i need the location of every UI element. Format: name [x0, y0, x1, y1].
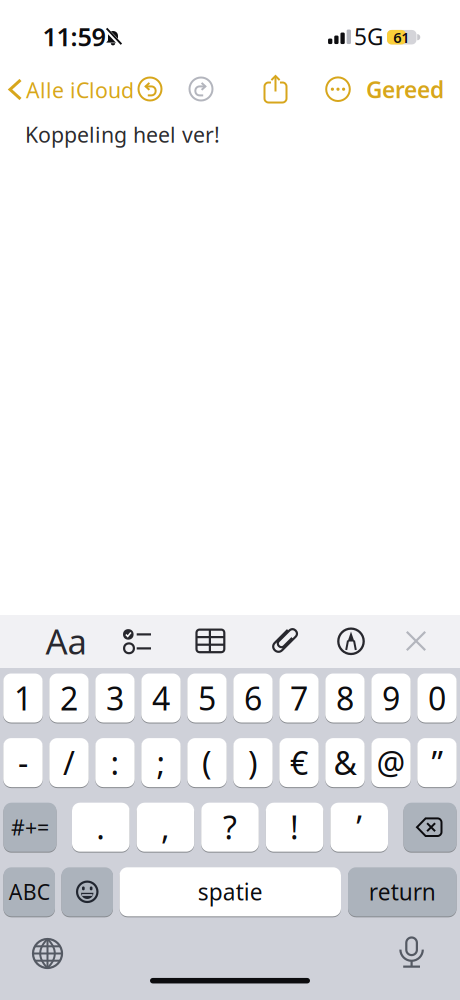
- staticText: .: [96, 806, 105, 848]
- staticText: 5G: [354, 21, 384, 51]
- staticText: 6: [244, 677, 262, 719]
- button[interactable]: return: [348, 866, 456, 917]
- button[interactable]: @: [371, 737, 411, 788]
- staticText: ,: [161, 806, 170, 848]
- staticText: €: [290, 741, 308, 784]
- staticText: ): [248, 741, 258, 784]
- staticText: 0: [428, 677, 446, 719]
- button[interactable]: 9: [371, 672, 411, 723]
- button[interactable]: More: [323, 74, 353, 104]
- button[interactable]: ABC: [3, 866, 55, 917]
- button[interactable]: #+=: [3, 802, 56, 853]
- button[interactable]: Next keyboard: [31, 937, 63, 969]
- button[interactable]: Alle iCloud: [0, 72, 160, 106]
- staticText: @: [376, 741, 405, 784]
- staticText: ABC: [9, 878, 50, 906]
- button[interactable]: 5: [187, 672, 227, 723]
- button[interactable]: 0: [417, 672, 457, 723]
- staticText: 2: [60, 677, 78, 719]
- staticText: Aa: [45, 618, 86, 664]
- button[interactable]: 8: [325, 672, 365, 723]
- staticText: Alle iCloud: [26, 76, 134, 104]
- staticText: #+=: [11, 813, 49, 841]
- button[interactable]: Close: [394, 619, 438, 663]
- staticText: /: [63, 741, 75, 784]
- staticText: 8: [336, 677, 354, 719]
- button[interactable]: ”: [417, 737, 457, 788]
- button[interactable]: ?: [201, 802, 259, 853]
- button[interactable]: /: [49, 737, 89, 788]
- button[interactable]: Gereed: [355, 72, 455, 106]
- button[interactable]: €: [279, 737, 319, 788]
- button[interactable]: Dictate: [395, 937, 428, 968]
- button[interactable]: ): [233, 737, 273, 788]
- staticText: Gereed: [366, 74, 444, 104]
- staticText: &: [333, 741, 356, 784]
- staticText: -: [18, 741, 28, 784]
- staticText: 11:59: [42, 20, 105, 53]
- staticText: ;: [156, 741, 165, 784]
- staticText: 7: [290, 677, 308, 719]
- button[interactable]: &: [325, 737, 365, 788]
- button[interactable]: Delete: [403, 802, 456, 853]
- button[interactable]: 1: [3, 672, 43, 723]
- button[interactable]: 2: [49, 672, 89, 723]
- staticText: 5: [198, 677, 216, 719]
- staticText: spatie: [198, 877, 263, 907]
- staticText: :: [110, 741, 119, 784]
- button[interactable]: Format: [38, 619, 94, 663]
- button[interactable]: Undo: [135, 74, 165, 104]
- staticText: ’: [356, 806, 362, 848]
- button[interactable]: 6: [233, 672, 273, 723]
- button[interactable]: Attach: [262, 619, 306, 663]
- button[interactable]: spatie: [119, 866, 341, 917]
- staticText: Koppeling heel ver!: [25, 120, 220, 149]
- button[interactable]: :: [95, 737, 135, 788]
- button[interactable]: ;: [141, 737, 181, 788]
- button[interactable]: ,: [137, 802, 194, 853]
- button[interactable]: Emoji: [61, 866, 113, 917]
- staticText: ”: [431, 741, 442, 784]
- staticText: 3: [106, 677, 124, 719]
- button[interactable]: ’: [330, 802, 388, 853]
- button[interactable]: (: [187, 737, 227, 788]
- button[interactable]: 7: [279, 672, 319, 723]
- staticText: (: [202, 741, 212, 784]
- button[interactable]: !: [266, 802, 323, 853]
- button[interactable]: -: [3, 737, 43, 788]
- staticText: 1: [14, 677, 32, 719]
- staticText: 9: [382, 677, 400, 719]
- staticText: !: [290, 806, 299, 848]
- button[interactable]: Share: [258, 70, 292, 106]
- staticText: 4: [152, 677, 170, 719]
- button[interactable]: Checklist: [116, 619, 160, 663]
- button[interactable]: 4: [141, 672, 181, 723]
- button[interactable]: Redo: [186, 74, 216, 104]
- button[interactable]: 3: [95, 672, 135, 723]
- staticText: return: [369, 877, 436, 907]
- button[interactable]: .: [72, 802, 130, 853]
- button[interactable]: Markup: [329, 619, 373, 663]
- staticText: 61: [393, 27, 409, 47]
- button[interactable]: Table: [188, 619, 232, 663]
- staticText: ?: [223, 806, 237, 848]
